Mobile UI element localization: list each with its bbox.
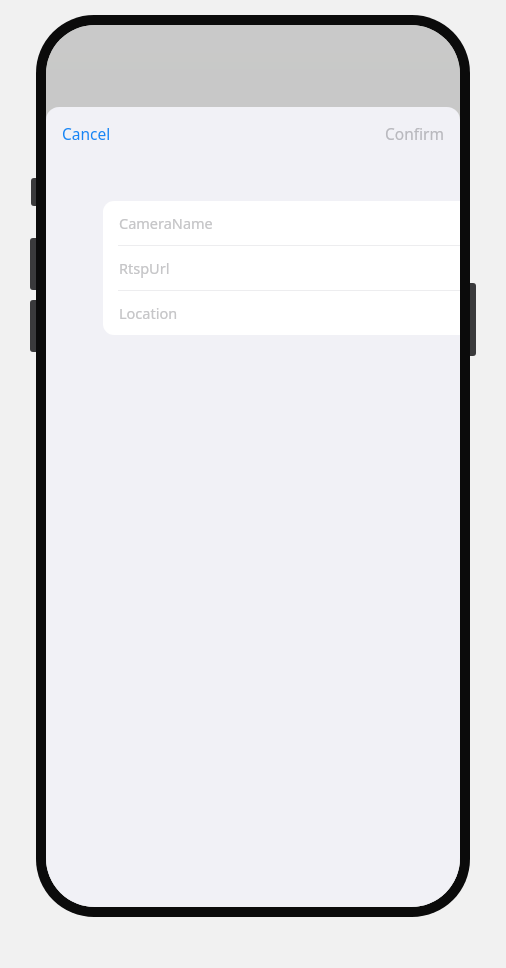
button[interactable]: Location bbox=[103, 291, 460, 335]
staticText: RtspUrl bbox=[119, 258, 170, 278]
button[interactable]: Cancel bbox=[56, 117, 117, 150]
staticText: CameraName bbox=[119, 213, 213, 233]
staticText: Location bbox=[119, 303, 178, 323]
button[interactable]: Confirm bbox=[379, 117, 450, 150]
staticText: Cancel bbox=[62, 123, 111, 144]
button[interactable]: RtspUrl bbox=[103, 246, 460, 290]
button[interactable]: CameraName bbox=[103, 201, 460, 245]
staticText: Confirm bbox=[385, 123, 444, 144]
